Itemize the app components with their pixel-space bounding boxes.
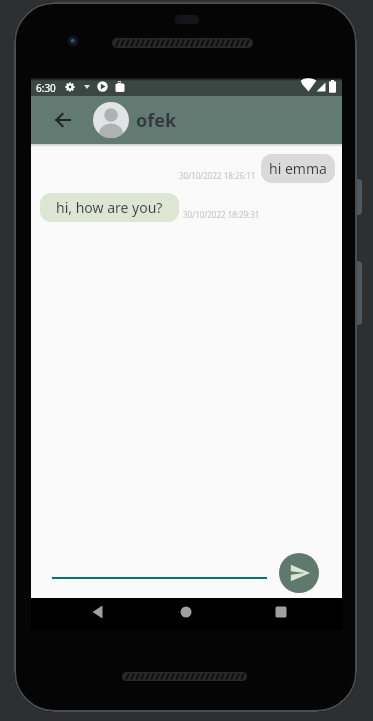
staticText: ofek: [136, 108, 177, 133]
button[interactable]: [91, 605, 105, 619]
button[interactable]: [54, 111, 72, 129]
staticText: 6:30: [36, 81, 56, 95]
staticText: 30/10/2022 18:26:11: [179, 170, 256, 181]
button[interactable]: hi, how are you?: [40, 193, 179, 222]
staticText: hi emma: [269, 159, 327, 178]
button[interactable]: [180, 606, 192, 618]
button[interactable]: [279, 553, 319, 593]
button[interactable]: hi emma: [261, 154, 335, 183]
staticText: 30/10/2022 18:29:31: [183, 209, 260, 220]
button[interactable]: [275, 606, 287, 618]
staticText: hi, how are you?: [56, 198, 163, 217]
